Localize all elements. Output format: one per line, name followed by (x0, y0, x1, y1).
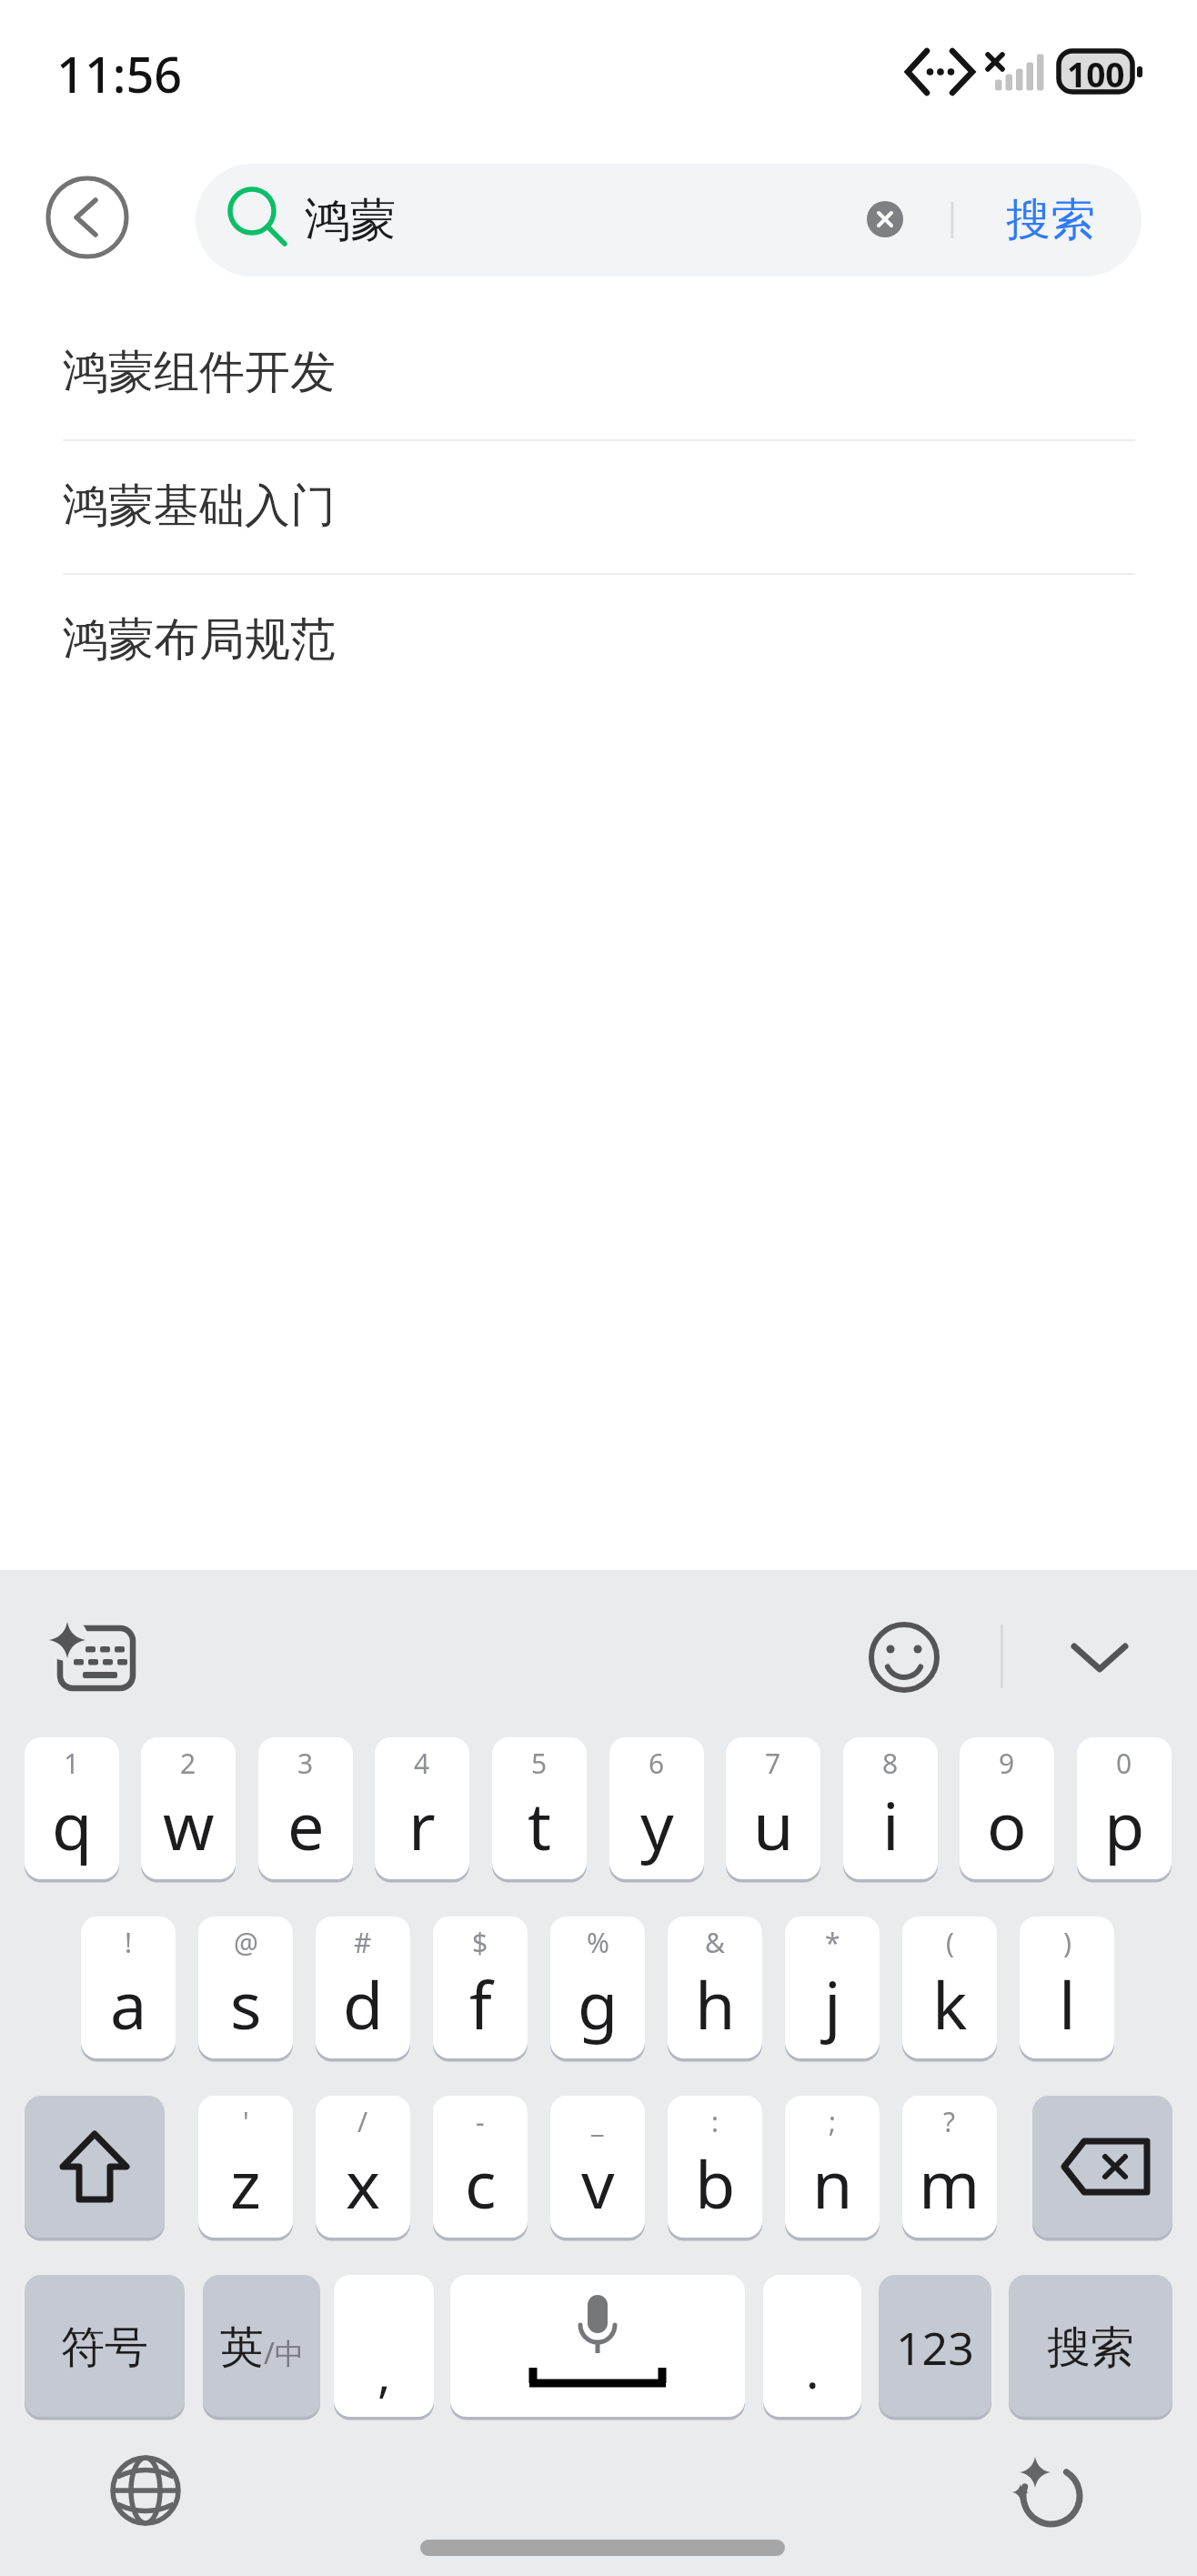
button[interactable] (847, 199, 923, 239)
staticText: f (469, 1959, 492, 2048)
button[interactable]: 搜索 (960, 164, 1142, 277)
staticText: 搜索 (1006, 192, 1095, 248)
staticText: , (377, 2340, 391, 2407)
staticText: 英 (220, 2320, 264, 2375)
staticText: i (882, 1780, 900, 1869)
staticText: e (287, 1780, 325, 1869)
staticText: l (1059, 1959, 1076, 2048)
button[interactable]: & (668, 1917, 762, 2062)
button[interactable]: ; (785, 2096, 880, 2241)
button[interactable]: 符号 (25, 2275, 185, 2420)
button[interactable]: * (785, 1917, 880, 2062)
button[interactable]: % (550, 1917, 645, 2062)
button[interactable]: ( (902, 1917, 997, 2062)
staticText: ) (1063, 1924, 1071, 1961)
button[interactable] (102, 2447, 189, 2534)
staticText: g (578, 1959, 619, 2048)
staticText: /中 (264, 2333, 304, 2373)
staticText: m (919, 2138, 981, 2228)
button[interactable]: 4 (375, 1737, 469, 1883)
button[interactable]: , (334, 2275, 434, 2420)
staticText: 5 (531, 1745, 548, 1782)
button[interactable]: # (316, 1917, 410, 2062)
staticText: s (230, 1959, 262, 2048)
staticText: % (587, 1924, 609, 1961)
staticText: x (346, 2138, 381, 2228)
staticText: 2 (180, 1745, 196, 1782)
button[interactable]: 2 (141, 1737, 236, 1883)
staticText: 3 (297, 1745, 314, 1782)
staticText: 搜索 (1047, 2320, 1134, 2375)
button[interactable] (864, 1617, 944, 1697)
staticText: p (1104, 1780, 1145, 1869)
staticText: 4 (414, 1745, 430, 1782)
button[interactable]: ) (1020, 1917, 1114, 2062)
staticText: q (52, 1780, 93, 1869)
staticText: b (695, 2138, 736, 2228)
button[interactable] (1001, 2447, 1101, 2547)
staticText: h (695, 1959, 736, 2048)
button[interactable]: @ (198, 1917, 293, 2062)
staticText: . (806, 2336, 820, 2403)
staticText: 9 (999, 1745, 1015, 1782)
staticText: 0 (1116, 1745, 1132, 1782)
staticText: c (465, 2138, 497, 2228)
button[interactable]: $ (433, 1917, 528, 2062)
staticText: - (476, 2103, 485, 2140)
button[interactable]: / (316, 2096, 410, 2241)
button[interactable]: 123 (879, 2275, 991, 2420)
staticText: / (357, 2103, 368, 2140)
staticText: z (230, 2138, 261, 2228)
staticText: a (110, 1959, 147, 2048)
button[interactable] (40, 1612, 149, 1706)
button[interactable]: 英 (203, 2275, 320, 2420)
staticText: # (354, 1924, 372, 1961)
staticText: 100 (1067, 51, 1125, 92)
button[interactable] (1061, 1619, 1161, 1696)
staticText: k (932, 1959, 968, 2048)
staticText: n (812, 2138, 853, 2228)
staticText: o (987, 1780, 1027, 1869)
button[interactable]: 6 (609, 1737, 704, 1883)
staticText: 6 (649, 1745, 665, 1782)
button[interactable]: 鸿蒙组件开发 (0, 307, 1197, 441)
button[interactable]: 鸿蒙布局规范 (0, 575, 1197, 709)
button[interactable] (1032, 2096, 1172, 2241)
button[interactable]: ! (81, 1917, 176, 2062)
staticText: ( (946, 1924, 954, 1961)
button[interactable]: ' (198, 2096, 293, 2241)
staticText: 1 (64, 1745, 80, 1782)
button[interactable] (25, 2096, 165, 2241)
staticText: u (753, 1780, 794, 1869)
staticText: 7 (765, 1745, 781, 1782)
staticText: 符号 (61, 2320, 148, 2375)
staticText: : (711, 2103, 719, 2140)
button[interactable]: 搜索 (1009, 2275, 1172, 2420)
button[interactable] (45, 176, 129, 259)
button[interactable]: . (763, 2275, 861, 2420)
button[interactable]: 0 (1077, 1737, 1172, 1883)
staticText: d (343, 1959, 384, 2048)
staticText: 8 (882, 1745, 899, 1782)
button[interactable]: - (433, 2096, 528, 2241)
button[interactable] (450, 2275, 745, 2420)
button[interactable]: 8 (843, 1737, 938, 1883)
button[interactable]: _ (550, 2096, 645, 2241)
button[interactable]: 5 (492, 1737, 587, 1883)
staticText: t (528, 1780, 551, 1869)
staticText: 11:56 (56, 40, 183, 107)
button[interactable]: 9 (960, 1737, 1054, 1883)
button[interactable]: : (668, 2096, 762, 2241)
staticText: 鸿蒙组件开发 (63, 344, 336, 401)
staticText: j (824, 1959, 841, 2048)
button[interactable]: ? (902, 2096, 997, 2241)
staticText: * (825, 1924, 840, 1961)
button[interactable]: 鸿蒙基础入门 (0, 441, 1197, 575)
staticText: $ (472, 1924, 488, 1961)
staticText: ! (125, 1924, 133, 1961)
staticText: 鸿蒙布局规范 (63, 611, 336, 669)
staticText: 鸿蒙基础入门 (63, 478, 336, 535)
button[interactable]: 1 (25, 1737, 119, 1883)
button[interactable]: 7 (726, 1737, 820, 1883)
button[interactable]: 3 (258, 1737, 353, 1883)
